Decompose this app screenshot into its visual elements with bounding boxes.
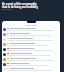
staticText: Be a part of the community (2, 2, 37, 5)
button[interactable] (2, 62, 60, 67)
button[interactable] (2, 32, 60, 37)
button[interactable] (2, 52, 60, 57)
button[interactable] (2, 67, 60, 72)
button[interactable] (2, 37, 60, 42)
button[interactable] (2, 42, 60, 47)
staticText: the future (2, 8, 13, 11)
button[interactable] (2, 47, 60, 52)
button[interactable] (2, 27, 60, 32)
staticText: that is defining and building (2, 5, 38, 8)
button[interactable] (2, 57, 60, 62)
